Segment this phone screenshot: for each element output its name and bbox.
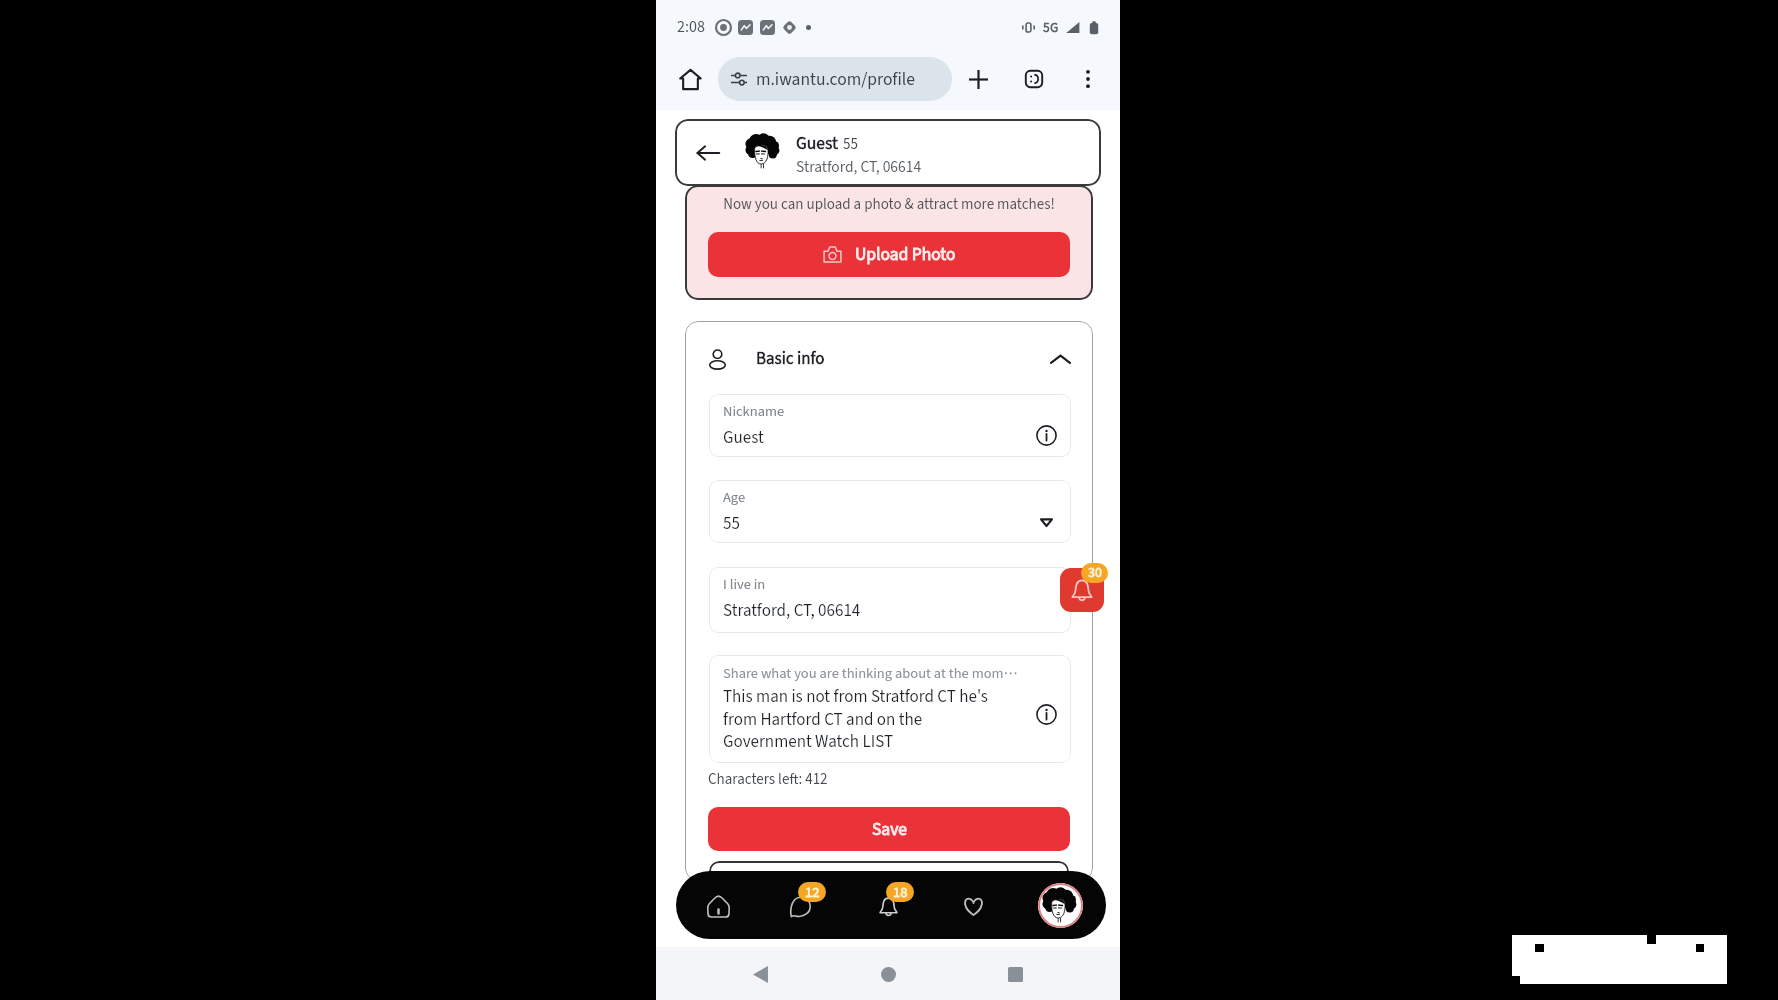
button[interactable]: Messages [778,881,826,929]
staticText: 12 [805,882,820,902]
staticText: Save [872,817,907,842]
staticText: This man is not from Stratford CT he's f… [723,685,1011,754]
button[interactable]: Age [709,480,1071,543]
button[interactable]: Home [866,952,910,996]
staticText: I live in [723,574,766,595]
button[interactable]: Upload Photo [708,232,1070,277]
staticText: Basic info [756,347,825,371]
staticText: Nickname [723,401,785,422]
staticText: 55 [723,512,740,536]
staticText: 30 [1088,563,1102,583]
button[interactable]: Back [690,135,725,170]
button[interactable]: Nickname [709,394,1071,457]
button[interactable]: m.iwantu.com/profile [718,57,952,101]
staticText: Guest [796,131,838,156]
staticText: 55 [843,134,858,155]
staticText: 18 [893,882,908,902]
staticText: Age [723,487,746,508]
staticText: m.iwantu.com/profile [756,67,915,92]
staticText: Stratford, CT, 06614 [796,156,922,178]
button[interactable]: Back [739,952,783,996]
staticText: 2:08 [677,16,705,39]
button[interactable]: Notifications [866,881,914,929]
button[interactable]: Home [694,881,742,929]
staticText: Characters left: 412 [708,769,828,790]
button[interactable] [709,861,1069,881]
button[interactable]: Likes [949,881,997,929]
staticText: Stratford, CT, 06614 [723,599,861,623]
button[interactable]: Save [708,807,1070,851]
button[interactable]: Recents [993,952,1037,996]
staticText: Now you can upload a photo & attract mor… [685,194,1093,215]
staticText: 5G [1043,18,1059,37]
button[interactable]: Profile [1036,881,1084,929]
button[interactable]: New tab [961,62,995,96]
button[interactable]: Notifications [1060,568,1104,612]
button[interactable]: More options [1071,62,1104,95]
button[interactable]: Basic info [685,329,1093,389]
staticText: Share what you are thinking about at the… [723,663,1019,684]
staticText: Guest [723,426,764,450]
button[interactable]: Share what you are thinking about at the… [709,655,1071,763]
button[interactable]: Tabs [1017,62,1050,95]
button[interactable]: I live in [709,567,1071,633]
button[interactable]: Home [672,61,708,97]
staticText: Upload Photo [855,242,956,267]
